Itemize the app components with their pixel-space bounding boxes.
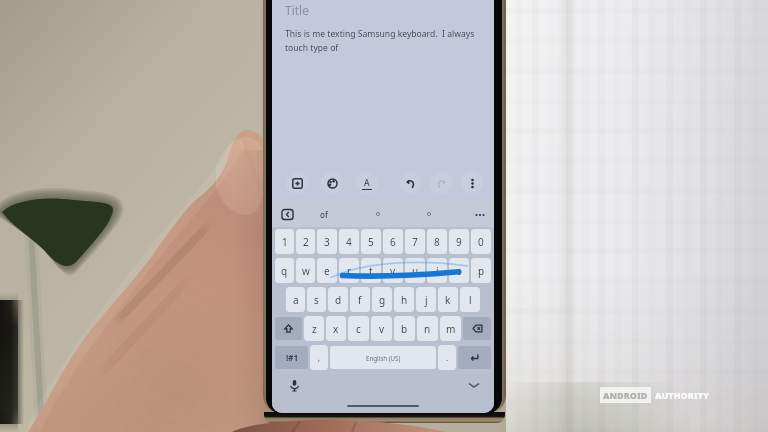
button[interactable]: !#1 — [275, 346, 308, 369]
button[interactable]: 8 — [427, 229, 447, 254]
staticText: j — [425, 293, 428, 307]
staticText: r — [347, 264, 352, 278]
button[interactable]: Undo — [399, 172, 421, 194]
button[interactable]: Enter — [458, 346, 491, 369]
staticText: 3 — [324, 235, 330, 249]
staticText: l — [469, 293, 472, 307]
button[interactable]: k — [438, 287, 458, 312]
staticText: n — [424, 322, 431, 336]
button[interactable]: 5 — [361, 229, 381, 254]
button[interactable]: b — [394, 316, 415, 341]
button[interactable]: v — [371, 316, 392, 341]
button[interactable]: Backspace — [463, 317, 491, 340]
button[interactable]: of — [316, 207, 332, 222]
staticText: b — [401, 322, 408, 336]
staticText: touch type of — [285, 42, 339, 54]
staticText: k — [445, 293, 451, 307]
staticText: z — [312, 322, 317, 336]
button[interactable]: Hide keyboard — [466, 377, 482, 393]
button[interactable]: More — [473, 208, 486, 221]
staticText: . — [446, 352, 449, 363]
button[interactable]: p — [471, 258, 491, 283]
staticText: s — [314, 293, 319, 307]
button[interactable]: r — [339, 258, 359, 283]
button[interactable]: 1 — [275, 229, 294, 254]
button[interactable]: o — [449, 258, 469, 283]
button[interactable]: English (US) — [330, 346, 436, 369]
staticText: 4 — [346, 235, 352, 249]
staticText: 0 — [478, 235, 484, 249]
button[interactable]: 3 — [317, 229, 337, 254]
button[interactable]: f — [350, 287, 370, 312]
button[interactable]: 7 — [405, 229, 425, 254]
button[interactable]: s — [307, 287, 326, 312]
staticText: ANDROID — [603, 389, 648, 401]
staticText: v — [379, 322, 385, 336]
button[interactable]: d — [328, 287, 348, 312]
staticText: q — [281, 264, 288, 278]
button[interactable]: a — [286, 287, 305, 312]
button[interactable]: 2 — [296, 229, 315, 254]
button[interactable]: i — [427, 258, 447, 283]
staticText: Title — [285, 2, 309, 18]
staticText: , — [318, 352, 321, 363]
button[interactable]: More options — [461, 172, 483, 194]
staticText: t — [369, 264, 373, 278]
staticText: !#1 — [286, 352, 298, 363]
button[interactable]: c — [348, 316, 369, 341]
button[interactable]: Shift — [275, 317, 302, 340]
button[interactable]: Voice input — [286, 377, 302, 393]
button[interactable]: x — [326, 316, 346, 341]
staticText: m — [446, 322, 456, 336]
button[interactable]: e — [317, 258, 337, 283]
button[interactable]: u — [405, 258, 425, 283]
button[interactable]: t — [361, 258, 381, 283]
button[interactable]: , — [310, 345, 328, 370]
staticText: p — [478, 264, 485, 278]
button[interactable]: Colour — [321, 172, 343, 194]
staticText: o — [456, 264, 463, 278]
staticText: 1 — [282, 235, 288, 249]
button[interactable]: h — [394, 287, 414, 312]
button[interactable]: 0 — [471, 229, 491, 254]
staticText: g — [379, 293, 386, 307]
button[interactable]: g — [372, 287, 392, 312]
staticText: AUTHORITY — [655, 389, 710, 401]
staticText: e — [324, 264, 330, 278]
staticText: English (US) — [366, 354, 401, 362]
button[interactable]: l — [460, 287, 480, 312]
button[interactable]: j — [416, 287, 436, 312]
button[interactable]: z — [304, 316, 324, 341]
staticText: 9 — [456, 235, 462, 249]
staticText: 5 — [368, 235, 374, 249]
staticText: i — [436, 264, 439, 278]
button[interactable]: . — [438, 345, 456, 370]
button[interactable]: n — [417, 316, 438, 341]
button[interactable]: Insert — [286, 172, 308, 194]
staticText: 7 — [412, 235, 418, 249]
staticText: 8 — [434, 235, 440, 249]
staticText: d — [335, 293, 342, 307]
staticText: x — [333, 322, 339, 336]
button[interactable]: 4 — [339, 229, 359, 254]
button[interactable]: w — [296, 258, 315, 283]
staticText: c — [356, 322, 361, 336]
button[interactable]: 6 — [383, 229, 403, 254]
button[interactable]: Previous suggestions — [280, 207, 294, 221]
staticText: 6 — [390, 235, 396, 249]
staticText: w — [302, 264, 310, 278]
staticText: 2 — [303, 235, 309, 249]
staticText: a — [293, 293, 299, 307]
button[interactable]: q — [275, 258, 294, 283]
button[interactable]: Redo — [430, 172, 452, 194]
staticText: h — [401, 293, 408, 307]
button[interactable]: y — [383, 258, 403, 283]
button[interactable]: Text style — [356, 172, 378, 194]
button[interactable]: 9 — [449, 229, 469, 254]
staticText: of — [320, 209, 328, 220]
staticText: A — [364, 177, 370, 189]
staticText: This is me texting Samsung keyboard. I a… — [285, 28, 475, 40]
staticText: y — [390, 264, 396, 278]
button[interactable]: m — [440, 316, 461, 341]
staticText: f — [358, 293, 362, 307]
